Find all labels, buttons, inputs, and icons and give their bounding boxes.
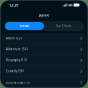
- button[interactable]: Adventure (56): [2, 44, 86, 55]
- staticText: Biography (13): [6, 58, 27, 62]
- button[interactable]: Top Charts: [44, 22, 83, 30]
- staticText: 12:39: [9, 2, 18, 8]
- staticText: Comedy (38): [6, 69, 24, 73]
- staticText: Action (22): [6, 36, 22, 40]
- staticText: Browse: [19, 24, 29, 28]
- button[interactable]: Comedy (38): [2, 66, 86, 77]
- staticText: Documentary (14): [6, 81, 30, 84]
- staticText: Adventure (56): [6, 47, 28, 51]
- staticText: Explore: [38, 14, 49, 17]
- staticText: Top Charts: [56, 24, 71, 28]
- button[interactable]: Biography (13): [2, 55, 86, 66]
- button[interactable]: Action (22): [2, 33, 86, 44]
- button[interactable]: Documentary (14): [2, 77, 86, 88]
- button[interactable]: Browse: [5, 22, 44, 30]
